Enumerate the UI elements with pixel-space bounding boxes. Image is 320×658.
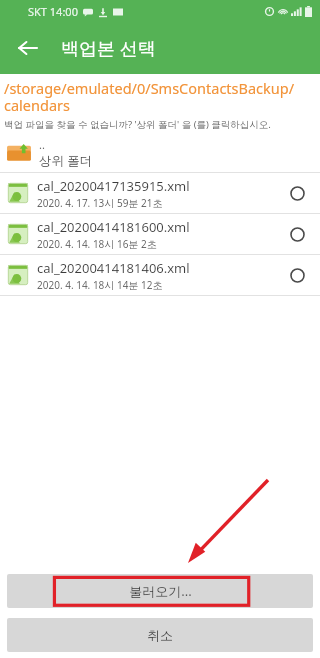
- button[interactable]: 취소: [7, 618, 313, 652]
- staticText: 백업 파일을 찾을 수 없습니까? '상위 폴더' 을 (를) 클릭하십시오.: [4, 118, 271, 131]
- button[interactable]: Back: [8, 28, 48, 68]
- button[interactable]: 불러오기...: [7, 574, 313, 608]
- staticText: 불러오기...: [129, 582, 192, 600]
- staticText: 2020. 4. 14. 18시 14분 12초: [37, 278, 163, 292]
- button[interactable]: ..: [0, 134, 320, 172]
- staticText: 백업본 선택: [61, 36, 156, 61]
- staticText: 상위 폴더: [39, 152, 93, 169]
- staticText: 2020. 4. 14. 18시 16분 2초: [37, 237, 157, 251]
- staticText: SKT 14:00: [28, 4, 78, 19]
- button[interactable]: cal_20200414181406.xml: [0, 255, 320, 295]
- staticText: 취소: [147, 627, 173, 643]
- staticText: 2020. 4. 17. 13시 59분 21초: [37, 196, 163, 210]
- button[interactable]: cal_20200414181600.xml: [0, 214, 320, 254]
- staticText: ..: [39, 137, 45, 152]
- staticText: /storage/emulated/0/SmsContactsBackup/ca…: [4, 78, 314, 115]
- staticText: cal_20200414181406.xml: [37, 259, 190, 277]
- staticText: cal_20200414181600.xml: [37, 218, 190, 236]
- staticText: cal_20200417135915.xml: [37, 177, 190, 195]
- button[interactable]: cal_20200417135915.xml: [0, 173, 320, 213]
